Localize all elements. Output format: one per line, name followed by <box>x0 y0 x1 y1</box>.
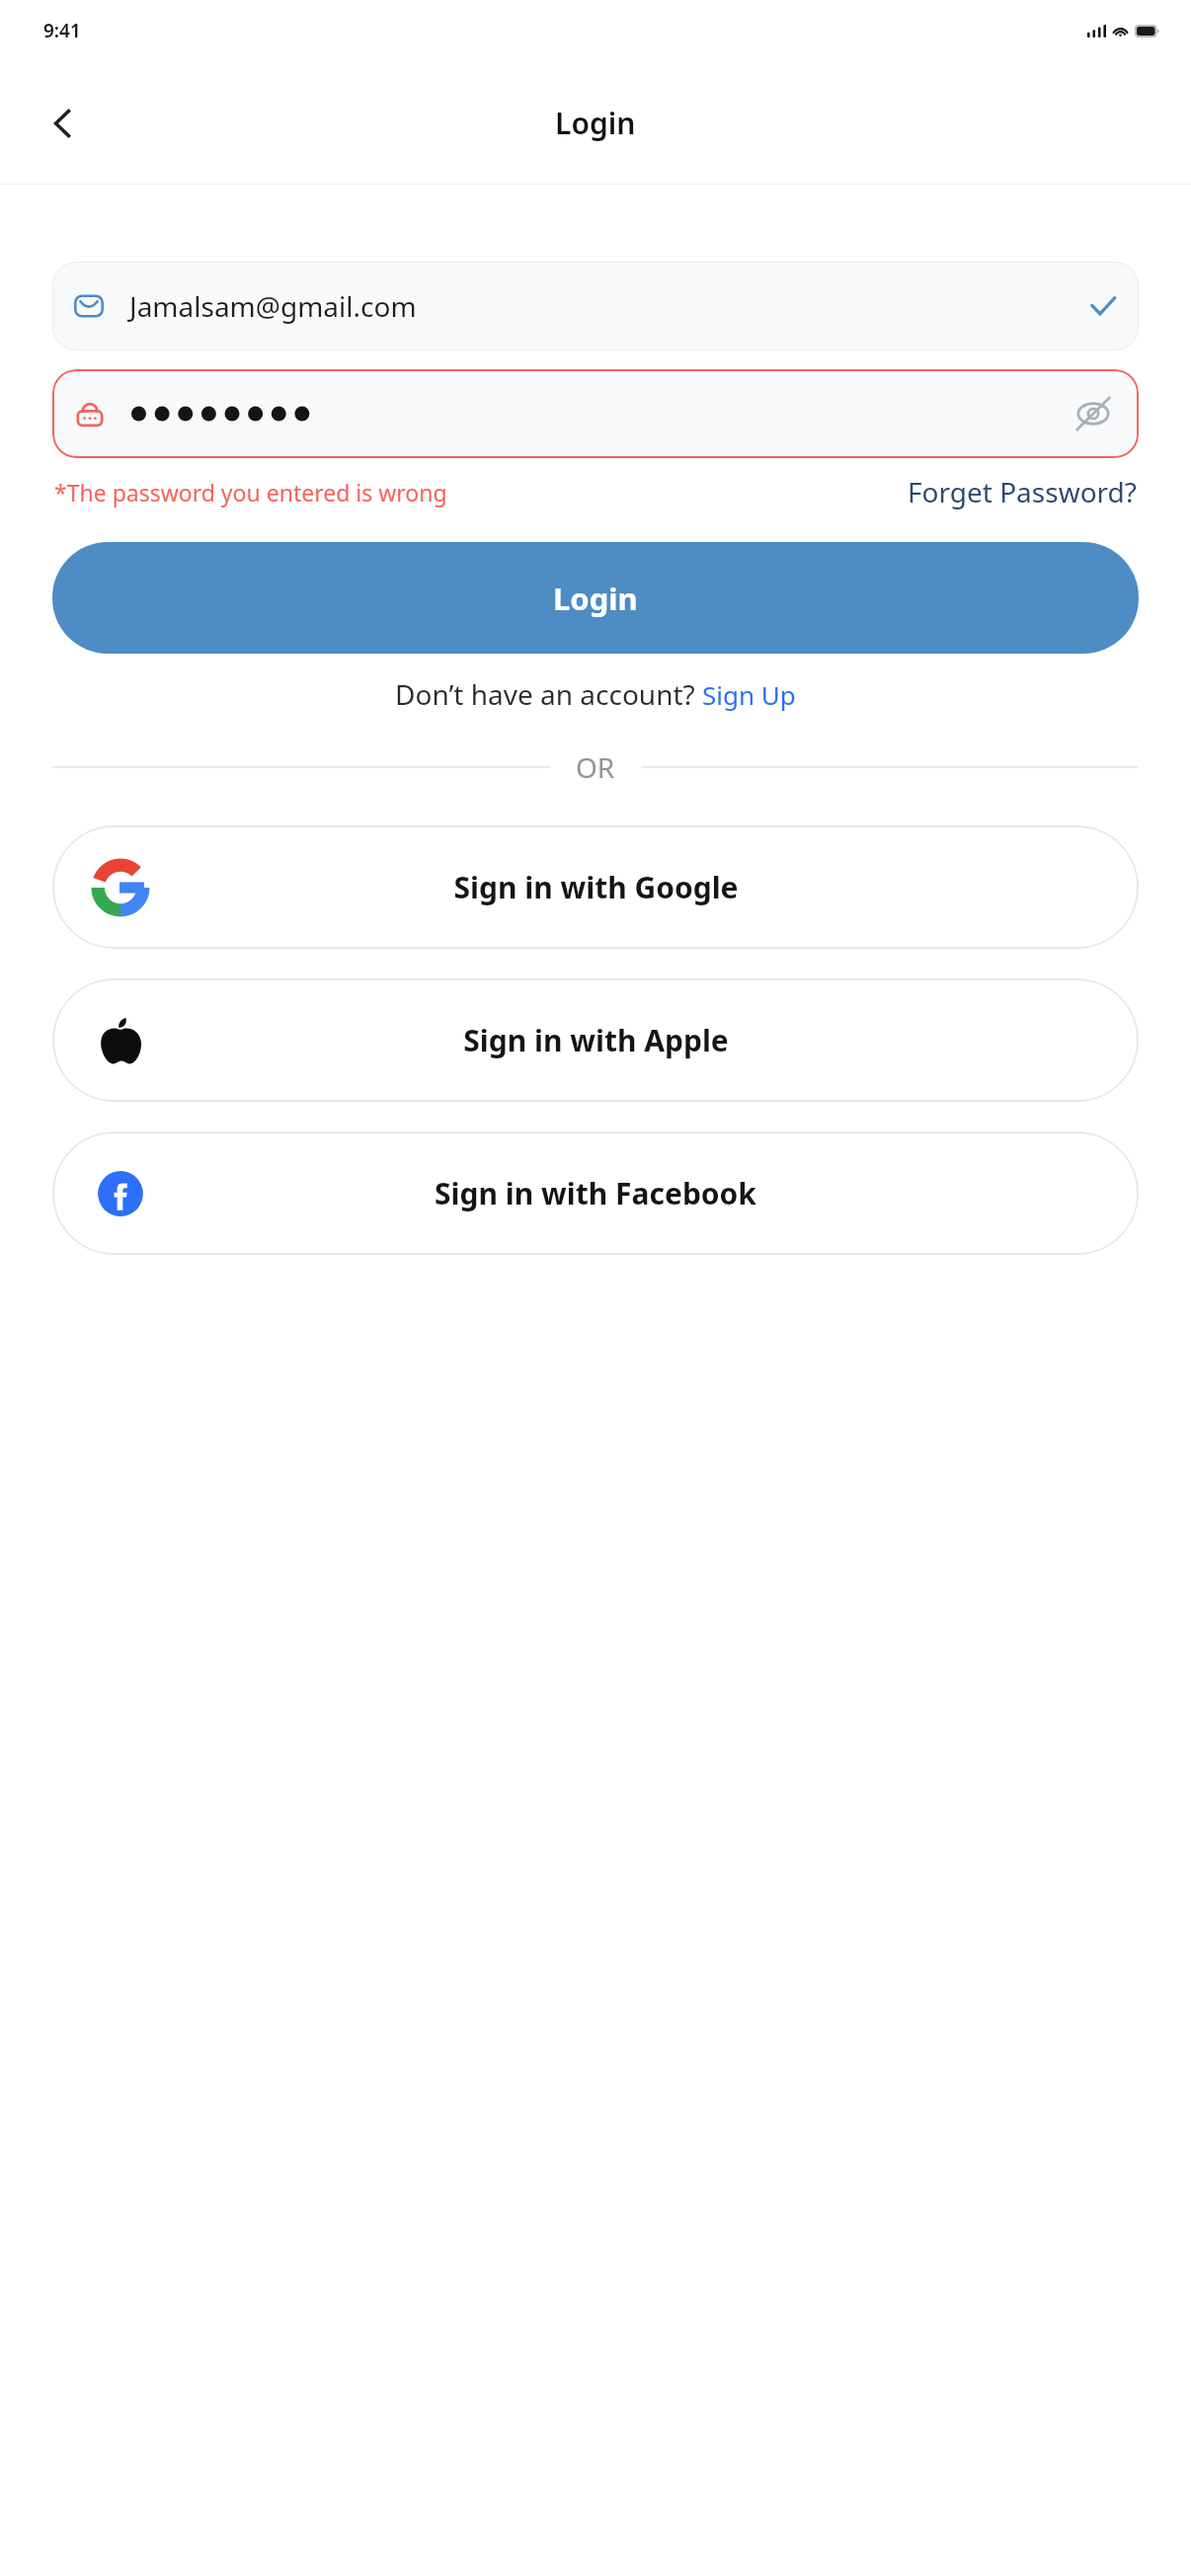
button[interactable]: Sign in with Google <box>52 825 1139 949</box>
button[interactable]: Login <box>52 542 1139 654</box>
staticText: Jamalsam@gmail.com <box>129 287 417 325</box>
button[interactable]: Sign Up <box>702 677 796 712</box>
staticText: Don’t have an account? <box>395 675 702 713</box>
staticText: Sign Up <box>702 677 796 712</box>
button[interactable]: Jamalsam@gmail.com <box>52 262 1139 351</box>
staticText: Sign in with Facebook <box>435 1173 756 1213</box>
button[interactable]: Sign in with Facebook <box>52 1132 1139 1255</box>
staticText: *The password you entered is wrong <box>54 477 447 507</box>
staticText: Forget Password? <box>908 473 1137 510</box>
staticText: Login <box>555 103 636 143</box>
staticText: Sign in with Google <box>453 867 739 907</box>
button[interactable]: Back <box>30 90 97 157</box>
staticText: 9:41 <box>43 18 81 43</box>
button[interactable]: Forget Password? <box>908 473 1137 510</box>
staticText: Sign in with Apple <box>463 1020 729 1060</box>
button[interactable]: Show password <box>52 369 1139 458</box>
staticText: Login <box>553 578 638 619</box>
button[interactable]: Sign in with Apple <box>52 978 1139 1102</box>
staticText: OR <box>576 748 615 786</box>
button[interactable]: Show password <box>1070 390 1117 437</box>
